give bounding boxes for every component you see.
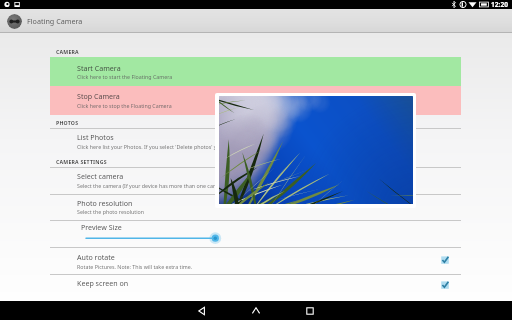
staticText: CAMERA SETTINGS xyxy=(56,158,107,165)
button[interactable] xyxy=(50,57,461,86)
staticText: Click here list your Photos. If you sele… xyxy=(77,143,265,150)
staticText: 12:20 xyxy=(491,0,508,9)
staticText: Select the camera (If your device has mo… xyxy=(77,182,228,189)
button[interactable]: Toggle xyxy=(440,280,450,290)
button[interactable]: Recent apps xyxy=(283,301,337,320)
button[interactable]: Back xyxy=(175,301,229,320)
staticText: Select the photo resolution xyxy=(77,208,145,215)
staticText: Start Camera xyxy=(77,63,121,73)
button[interactable]: Camera preview window xyxy=(215,93,416,208)
button[interactable] xyxy=(50,86,461,115)
staticText: List Photos xyxy=(77,132,114,142)
button[interactable] xyxy=(50,167,461,194)
button[interactable] xyxy=(50,128,461,155)
staticText: Auto rotate xyxy=(77,252,115,262)
staticText: Click here to start the Floating Camera xyxy=(77,73,173,80)
button[interactable]: Preview size slider xyxy=(77,230,227,247)
button[interactable]: Home xyxy=(229,301,283,320)
staticText: Preview Size xyxy=(81,222,122,232)
staticText: Photo resolution xyxy=(77,198,133,208)
button[interactable] xyxy=(50,194,461,220)
button[interactable] xyxy=(50,274,461,301)
staticText: Stop Camera xyxy=(77,91,120,101)
staticText: Click here to stop the Floating Camera xyxy=(77,102,172,109)
staticText: Rotate Pictures. Note: This will take ex… xyxy=(77,263,193,270)
staticText: Keep screen on xyxy=(77,278,129,288)
staticText: CAMERA xyxy=(56,48,79,55)
button[interactable] xyxy=(50,247,461,274)
button[interactable]: Toggle xyxy=(440,255,450,265)
staticText: Select camera xyxy=(77,171,124,181)
staticText: PHOTOS xyxy=(56,119,79,126)
staticText: Floating Camera xyxy=(27,16,83,26)
